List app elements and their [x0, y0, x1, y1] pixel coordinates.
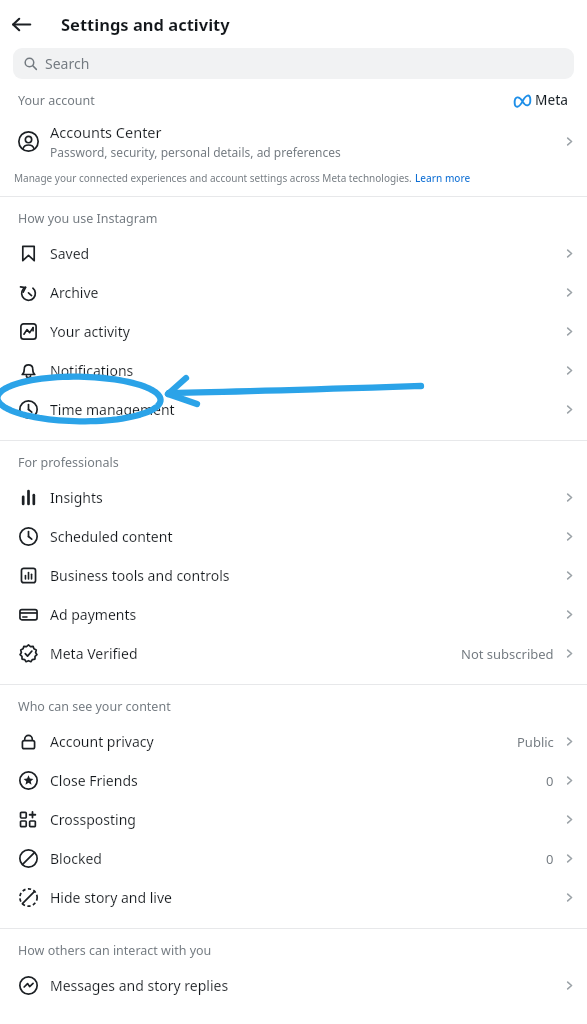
staticText: Messages and story replies [50, 976, 229, 995]
staticText: Notifications [50, 361, 134, 380]
staticText: Settings and activity [61, 13, 230, 35]
staticText: Business tools and controls [50, 566, 230, 585]
staticText: Meta Verified [50, 644, 138, 663]
staticText: Password, security, personal details, ad… [50, 144, 341, 160]
staticText: Insights [50, 488, 103, 507]
button[interactable]: Crossposting [0, 800, 587, 839]
staticText: Account privacy [50, 732, 154, 751]
staticText: Manage your connected experiences and ac… [14, 171, 415, 185]
button[interactable]: Time management [0, 390, 587, 429]
button[interactable]: Learn more [415, 171, 471, 185]
staticText: Archive [50, 283, 99, 302]
button[interactable]: Back [0, 3, 42, 45]
staticText: Public [517, 733, 554, 751]
button[interactable]: Meta Verified [0, 634, 587, 673]
staticText: For professionals [18, 454, 119, 471]
staticText: Scheduled content [50, 527, 173, 546]
button[interactable]: Archive [0, 273, 587, 312]
staticText: Blocked [50, 849, 102, 868]
staticText: Meta [535, 91, 569, 109]
staticText: 0 [546, 772, 554, 790]
staticText: Accounts Center [50, 122, 162, 142]
staticText: Hide story and live [50, 888, 172, 907]
button[interactable]: Insights [0, 478, 587, 517]
staticText: Saved [50, 244, 90, 263]
button[interactable]: Search [13, 48, 574, 79]
staticText: Close Friends [50, 771, 138, 790]
button[interactable]: Ad payments [0, 595, 587, 634]
staticText: Your account [18, 92, 95, 109]
button[interactable]: Close Friends [0, 761, 587, 800]
staticText: How others can interact with you [18, 942, 212, 959]
staticText: 0 [546, 850, 554, 868]
button[interactable]: Account privacy [0, 722, 587, 761]
button[interactable]: Scheduled content [0, 517, 587, 556]
staticText: Time management [50, 400, 175, 419]
staticText: Crossposting [50, 810, 136, 829]
button[interactable]: Saved [0, 234, 587, 273]
staticText: Your activity [50, 322, 130, 341]
button[interactable]: Notifications [0, 351, 587, 390]
button[interactable]: Accounts Center [0, 118, 587, 164]
button[interactable]: Hide story and live [0, 878, 587, 917]
staticText: Ad payments [50, 605, 137, 624]
staticText: How you use Instagram [18, 210, 158, 227]
staticText: Not subscribed [461, 645, 554, 663]
button[interactable]: Your activity [0, 312, 587, 351]
staticText: Search [45, 54, 90, 73]
button[interactable]: Blocked [0, 839, 587, 878]
staticText: Who can see your content [18, 698, 171, 715]
button[interactable]: Messages and story replies [0, 966, 587, 1005]
button[interactable]: Business tools and controls [0, 556, 587, 595]
